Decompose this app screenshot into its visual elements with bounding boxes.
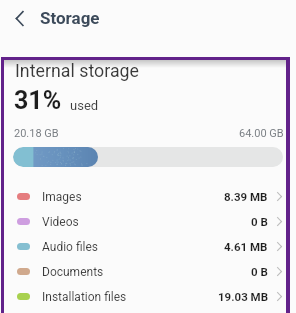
button[interactable]: Images xyxy=(4,184,286,209)
staticText: Videos xyxy=(42,215,79,229)
staticText: 20.18 GB xyxy=(14,127,59,140)
staticText: 8.39 MB xyxy=(224,190,268,203)
button[interactable]: Documents xyxy=(4,259,286,284)
staticText: 0 B xyxy=(251,215,268,228)
staticText: Installation files xyxy=(42,290,127,304)
staticText: Documents xyxy=(42,265,104,279)
staticText: Audio files xyxy=(42,240,99,254)
staticText: 4.61 MB xyxy=(224,240,268,253)
staticText: 0 B xyxy=(251,265,268,278)
staticText: 19.03 MB xyxy=(218,290,268,303)
staticText: 64.00 GB xyxy=(239,127,284,140)
staticText: Storage xyxy=(40,8,100,28)
button[interactable]: Installation files xyxy=(4,284,286,309)
staticText: Images xyxy=(42,190,82,204)
button[interactable]: Audio files xyxy=(4,234,286,259)
staticText: used xyxy=(70,98,99,113)
staticText: 31% xyxy=(14,86,62,115)
staticText: Internal storage xyxy=(15,60,139,81)
button[interactable]: Videos xyxy=(4,209,286,234)
button[interactable]: Back xyxy=(7,6,31,30)
